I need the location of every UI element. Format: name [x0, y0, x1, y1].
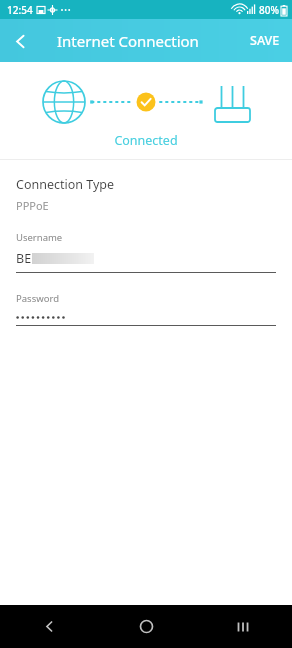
staticText: SAVE [250, 32, 280, 49]
staticText: Password [16, 292, 59, 305]
button[interactable]: Back [0, 21, 40, 61]
button[interactable]: Password [0, 292, 292, 326]
staticText: Internet Connection [57, 31, 199, 51]
staticText: PPPoE [16, 198, 49, 213]
button[interactable]: SAVE [238, 22, 292, 59]
staticText: Username [16, 231, 63, 244]
staticText: 80% [259, 3, 279, 17]
staticText: Connection Type [16, 176, 115, 193]
staticText: BE [16, 250, 32, 267]
button[interactable]: Back [0, 605, 98, 648]
button[interactable]: Home [98, 605, 195, 648]
staticText: 12:54 [7, 3, 33, 17]
button[interactable]: Recent apps [195, 605, 292, 648]
button[interactable]: Connection Type [0, 174, 292, 215]
button[interactable]: Username [0, 231, 292, 273]
staticText: Connected [114, 132, 178, 149]
